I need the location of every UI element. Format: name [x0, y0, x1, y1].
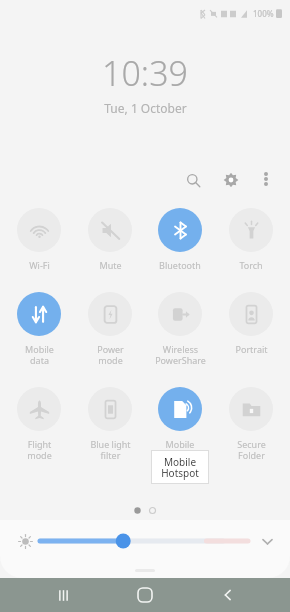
button[interactable] — [40, 528, 248, 554]
button[interactable]: Power mode — [78, 292, 142, 366]
staticText: Wireless PowerShare — [155, 343, 206, 366]
button[interactable]: Portrait — [219, 292, 283, 355]
staticText: 10:39 — [102, 50, 188, 96]
button[interactable]: Bluetooth — [148, 208, 212, 271]
button[interactable]: Wireless PowerShare — [148, 292, 212, 366]
staticText: Blue light filter — [90, 438, 131, 461]
button[interactable]: Back — [208, 578, 248, 612]
staticText: Portrait — [235, 343, 268, 355]
button[interactable]: Search — [178, 165, 208, 195]
staticText: Secure Folder — [237, 438, 266, 461]
button[interactable]: Torch — [219, 208, 283, 271]
staticText: Mobile Hotspot — [161, 455, 199, 480]
staticText: Mute — [99, 259, 122, 271]
button[interactable]: Settings — [216, 165, 246, 195]
staticText: Mobile data — [25, 343, 54, 366]
button[interactable]: Blue light filter — [78, 387, 142, 461]
button[interactable]: Wi-Fi — [7, 208, 71, 271]
staticText: 100% — [253, 8, 274, 19]
button[interactable]: Secure Folder — [219, 387, 283, 461]
button[interactable]: Expand brightness settings — [254, 528, 280, 554]
staticText: Power mode — [97, 343, 124, 366]
button[interactable]: More options — [252, 165, 280, 193]
button[interactable]: Mobile Hotspot — [148, 387, 212, 461]
staticText: Flight mode — [27, 438, 52, 461]
other: Brightness — [12, 528, 38, 554]
staticText: Wi-Fi — [29, 259, 50, 271]
button[interactable]: Recents — [43, 578, 83, 612]
staticText: Torch — [239, 259, 263, 271]
button[interactable]: Home — [125, 578, 165, 612]
button[interactable]: Mute — [78, 208, 142, 271]
staticText: Bluetooth — [159, 259, 201, 271]
button[interactable]: Mobile data — [7, 292, 71, 366]
button[interactable]: Flight mode — [7, 387, 71, 461]
staticText: Mobile Hotspot — [163, 438, 197, 461]
staticText: Tue, 1 October — [104, 100, 187, 116]
